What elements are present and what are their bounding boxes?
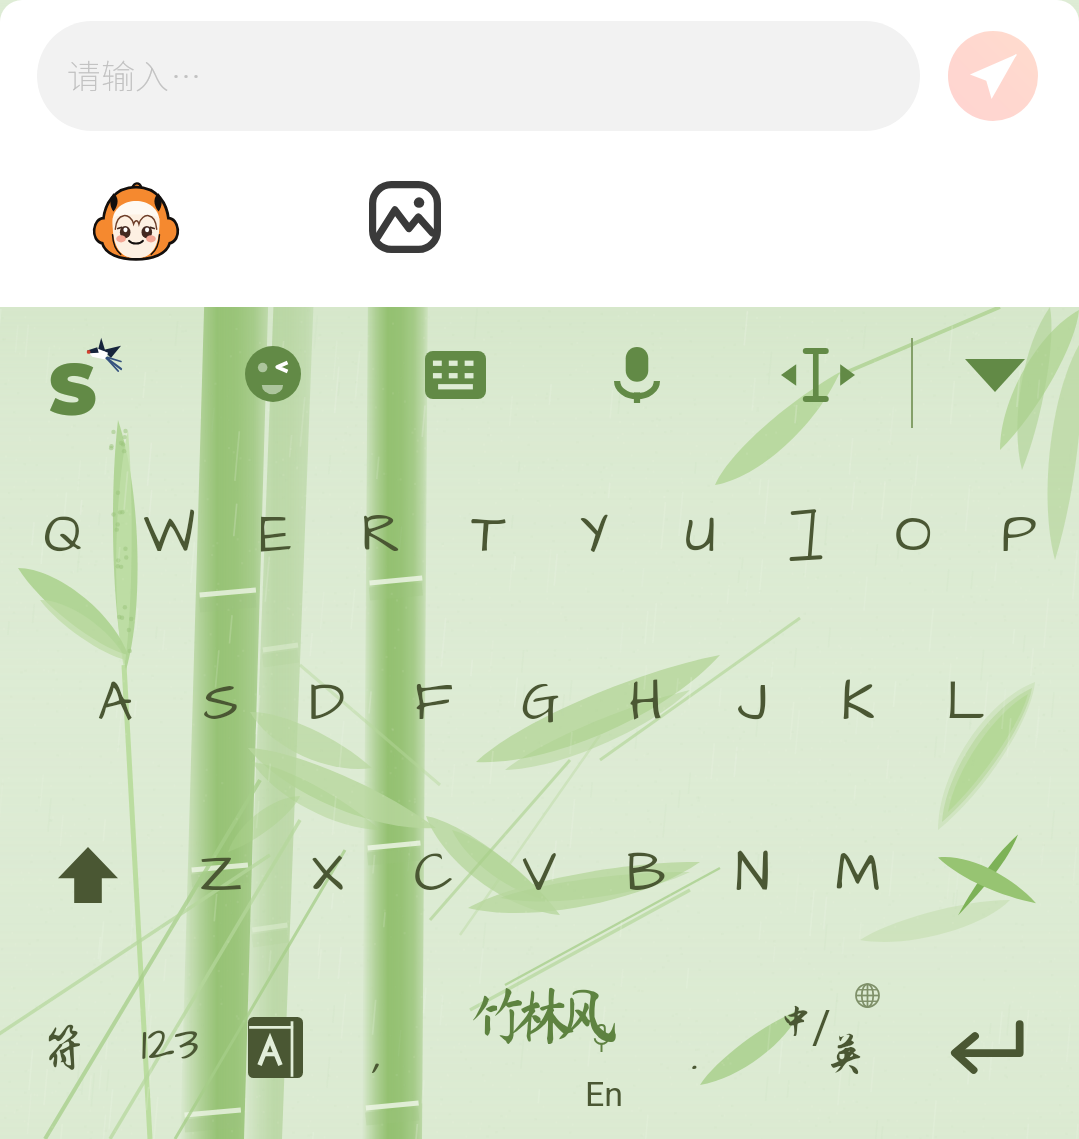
button[interactable]: 符	[10, 988, 118, 1108]
button[interactable]: .	[644, 994, 746, 1114]
staticText: E	[259, 497, 292, 573]
staticText: F	[414, 665, 453, 741]
button[interactable]: 中	[760, 970, 900, 1115]
staticText: W	[143, 497, 195, 573]
button[interactable]: Emoji	[229, 330, 317, 418]
button[interactable]: D	[274, 628, 380, 778]
staticText: 中	[778, 1002, 814, 1042]
button[interactable]: K	[805, 628, 911, 778]
staticText: Q	[43, 497, 83, 573]
button[interactable]: Z	[168, 799, 274, 949]
button[interactable]: W	[116, 460, 222, 610]
button[interactable]: 竹林风	[430, 980, 670, 1125]
staticText: N	[735, 836, 770, 912]
button[interactable]: L	[912, 628, 1018, 778]
staticText: G	[521, 665, 560, 741]
staticText: A	[97, 665, 133, 741]
staticText: /	[812, 1000, 831, 1054]
button[interactable]: Move cursor	[774, 331, 862, 419]
staticText: R	[361, 497, 401, 573]
button[interactable]: F	[380, 628, 486, 778]
staticText: O	[895, 497, 932, 573]
staticText: ⋯	[171, 53, 201, 96]
staticText: En	[585, 1074, 624, 1114]
staticText: 123	[141, 1012, 200, 1079]
staticText: P	[1001, 497, 1037, 573]
staticText: 符	[41, 1022, 88, 1074]
button[interactable]: O	[860, 460, 966, 610]
button[interactable]: Sogou menu	[38, 333, 134, 425]
staticText: M	[835, 836, 881, 912]
staticText: 请输入	[67, 50, 169, 99]
button[interactable]: Voice input	[593, 331, 681, 419]
staticText: ,	[373, 1018, 383, 1090]
staticText: Y	[579, 497, 609, 573]
button[interactable]: E	[222, 460, 328, 610]
button[interactable]: Q	[10, 460, 116, 610]
staticText: V	[522, 836, 557, 912]
button[interactable]: U	[647, 460, 753, 610]
button[interactable]: G	[487, 628, 593, 778]
staticText: K	[841, 665, 875, 741]
staticText: Z	[199, 836, 243, 912]
button[interactable]: Sticker	[90, 176, 182, 260]
staticText: 竹林风	[466, 983, 601, 1046]
button[interactable]: N	[699, 799, 805, 949]
button[interactable]: ,	[327, 994, 429, 1114]
button[interactable]: Picture	[367, 179, 442, 254]
button[interactable]: Dictionary	[221, 987, 329, 1107]
staticText: D	[309, 665, 345, 741]
staticText: 英	[824, 1031, 868, 1079]
staticText: T	[471, 497, 506, 573]
button[interactable]: Backspace	[930, 827, 1042, 923]
button[interactable]: B	[593, 799, 699, 949]
staticText: C	[414, 836, 453, 912]
button[interactable]: Hide keyboard	[951, 331, 1039, 419]
button[interactable]	[753, 460, 859, 610]
button[interactable]: R	[328, 460, 434, 610]
button[interactable]: T	[435, 460, 541, 610]
button[interactable]: M	[805, 799, 911, 949]
staticText: .	[691, 1018, 699, 1090]
staticText: U	[685, 497, 716, 573]
staticText: S	[203, 665, 239, 741]
button[interactable]: C	[380, 799, 486, 949]
button[interactable]: P	[966, 460, 1072, 610]
button[interactable]: Y	[541, 460, 647, 610]
staticText: S	[49, 345, 97, 433]
button[interactable]: Enter	[935, 989, 1041, 1104]
button[interactable]: 123	[116, 985, 224, 1105]
button[interactable]: S	[168, 628, 274, 778]
staticText: X	[311, 836, 344, 912]
button[interactable]: Keyboard layout	[411, 331, 499, 419]
button[interactable]: A	[62, 628, 168, 778]
button[interactable]: X	[274, 799, 380, 949]
button[interactable]: 请输入	[37, 21, 920, 131]
staticText: B	[626, 836, 666, 912]
button[interactable]: V	[486, 799, 592, 949]
staticText: L	[946, 665, 985, 741]
button[interactable]: Shift	[38, 829, 138, 921]
button[interactable]: Send	[948, 31, 1038, 121]
button[interactable]: J	[699, 628, 805, 778]
staticText: H	[629, 665, 663, 741]
button[interactable]: H	[593, 628, 699, 778]
staticText: J	[737, 665, 767, 741]
